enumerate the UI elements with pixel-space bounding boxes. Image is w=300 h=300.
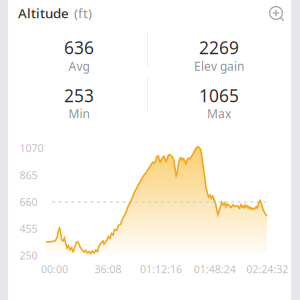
- button[interactable]: Zoom in: [264, 1, 290, 27]
- staticText: 1065: [199, 84, 239, 107]
- staticText: 2269: [199, 36, 239, 59]
- staticText: 253: [64, 84, 94, 107]
- staticText: 36:08: [94, 262, 121, 276]
- staticText: 660: [19, 195, 37, 209]
- staticText: 250: [19, 248, 37, 262]
- staticText: 1070: [19, 141, 43, 155]
- staticText: 455: [19, 221, 37, 236]
- staticText: 02:24:32: [246, 262, 288, 276]
- staticText: Altitude: [18, 4, 69, 22]
- staticText: 01:12:16: [140, 262, 182, 276]
- staticText: 865: [19, 168, 37, 182]
- staticText: 00:00: [41, 262, 68, 276]
- staticText: (ft): [74, 4, 92, 22]
- staticText: 636: [64, 36, 94, 59]
- staticText: 01:48:24: [194, 262, 236, 276]
- staticText: Avg: [68, 58, 89, 74]
- staticText: Max: [207, 105, 231, 121]
- staticText: Min: [68, 105, 89, 121]
- staticText: Elev gain: [194, 58, 244, 74]
